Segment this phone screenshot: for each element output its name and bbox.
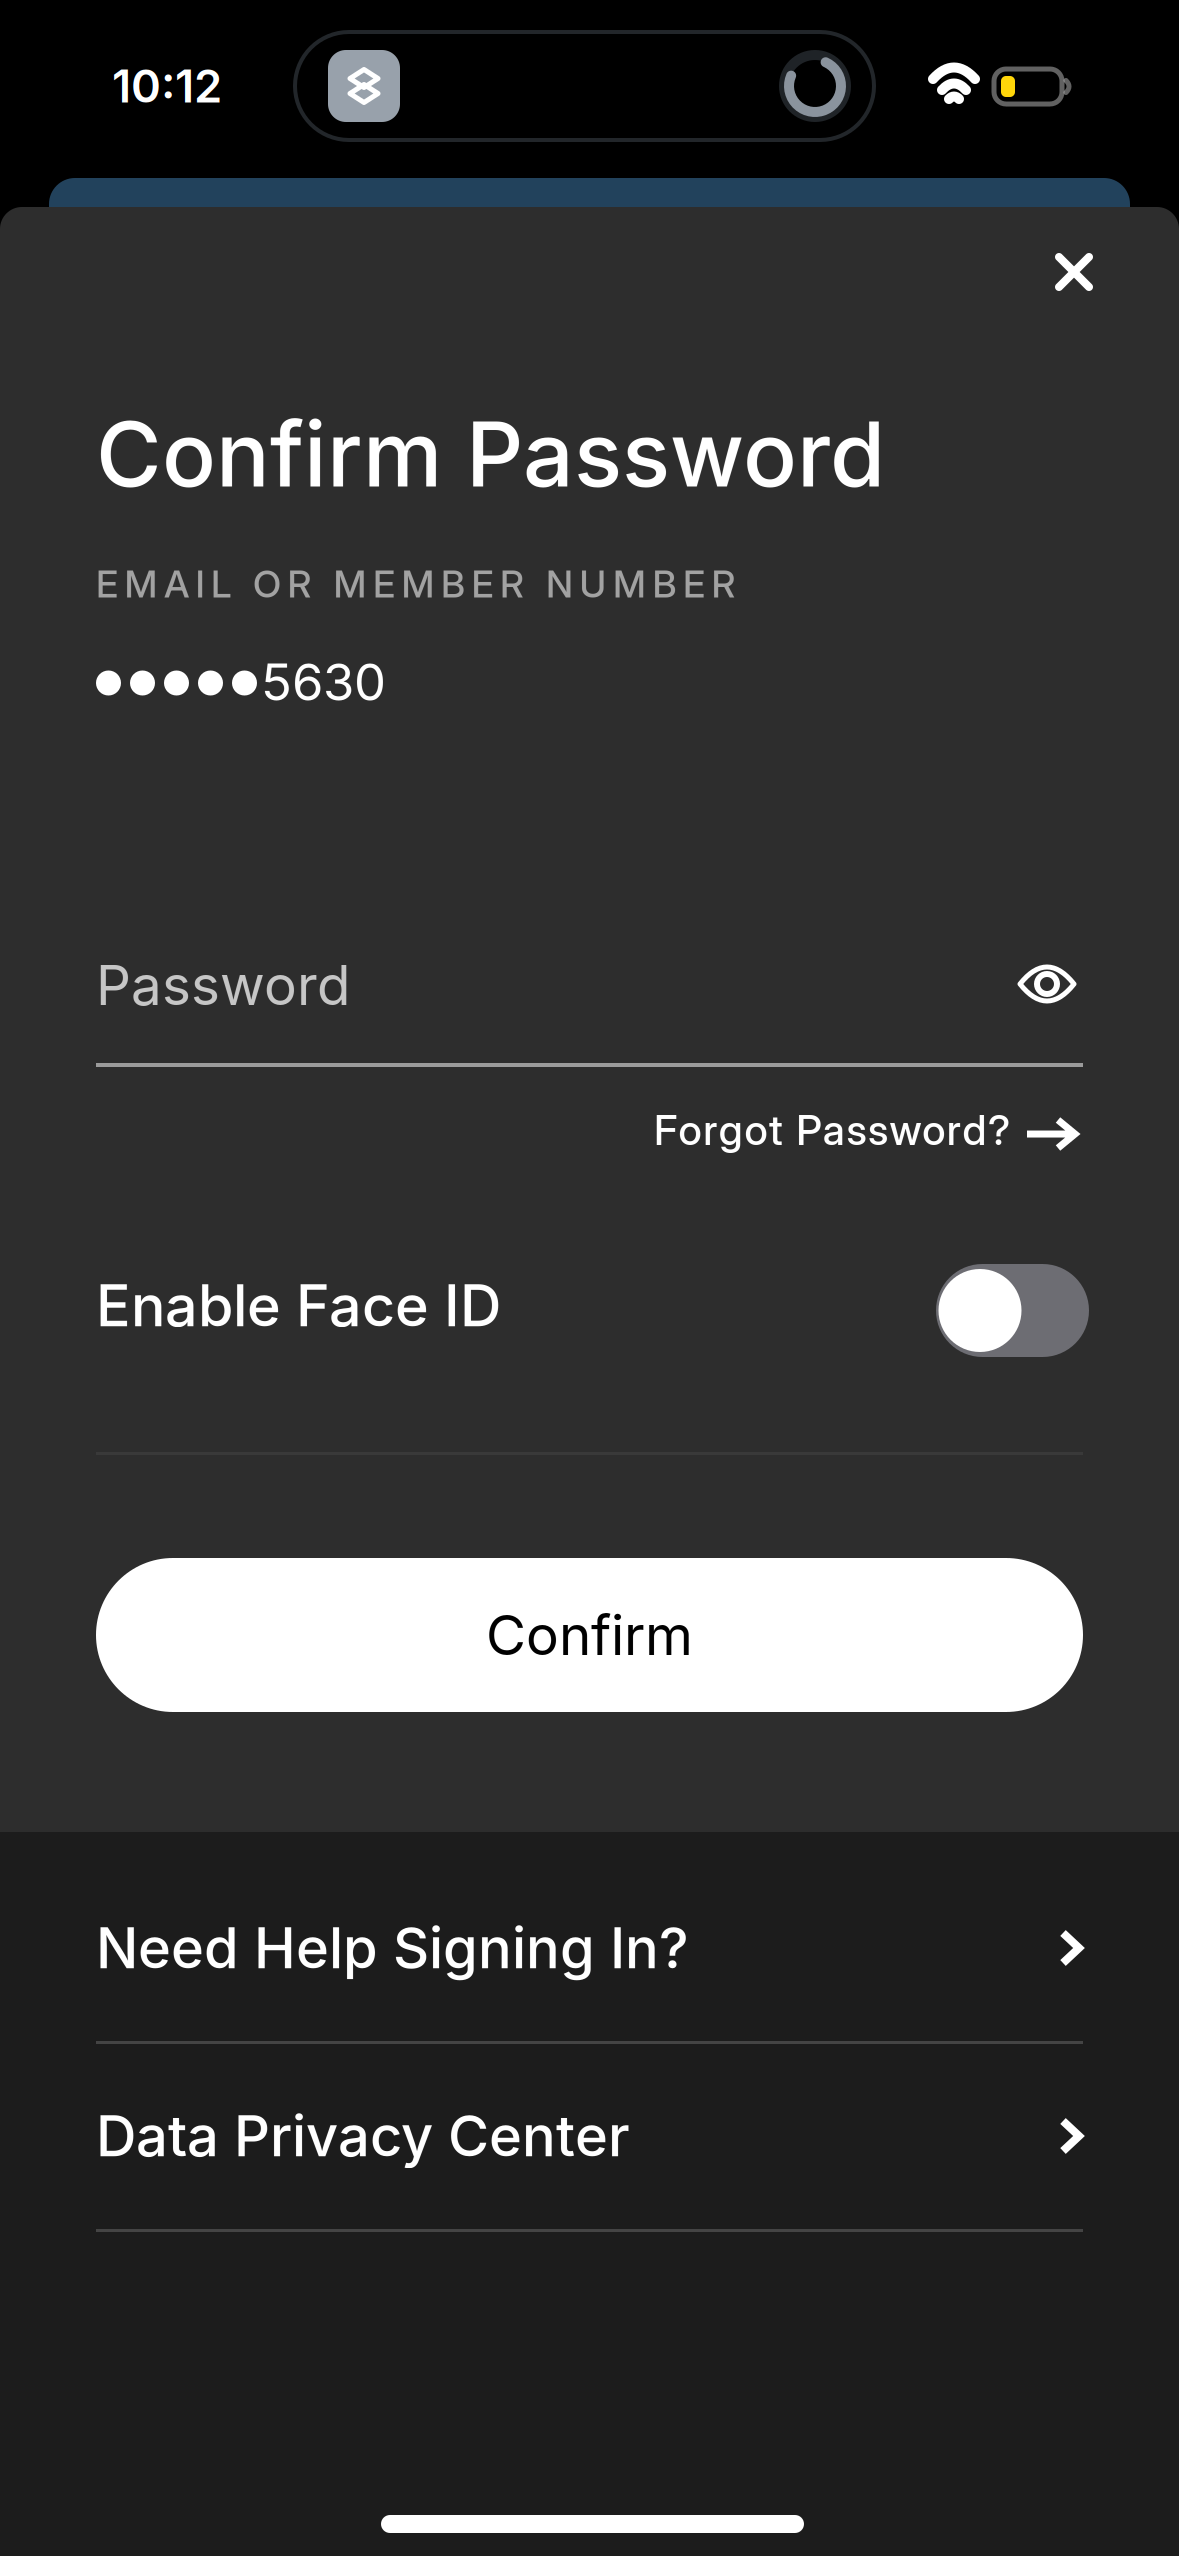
staticText: Confirm — [486, 1602, 693, 1668]
staticText: 10:12 — [112, 59, 222, 113]
button[interactable]: Confirm — [96, 1558, 1083, 1712]
staticText: 5630 — [261, 651, 386, 713]
staticText: Password — [96, 952, 350, 1018]
staticText: Need Help Signing In? — [96, 1914, 689, 1982]
button[interactable]: Data Privacy Center — [96, 2043, 1083, 2232]
staticText: EMAIL OR MEMBER NUMBER — [96, 561, 735, 607]
button[interactable]: Show password — [1002, 939, 1092, 1029]
staticText: Confirm Password — [96, 400, 885, 508]
staticText: Data Privacy Center — [96, 2102, 630, 2170]
staticText: Forgot Password? — [654, 1105, 1010, 1155]
staticText: Enable Face ID — [96, 1271, 501, 1340]
button[interactable]: Forgot Password? — [651, 1085, 1081, 1175]
button[interactable]: Close — [1014, 212, 1134, 332]
button[interactable]: Need Help Signing In? — [96, 1855, 1083, 2044]
button[interactable]: Enable Face ID — [96, 1264, 1089, 1357]
